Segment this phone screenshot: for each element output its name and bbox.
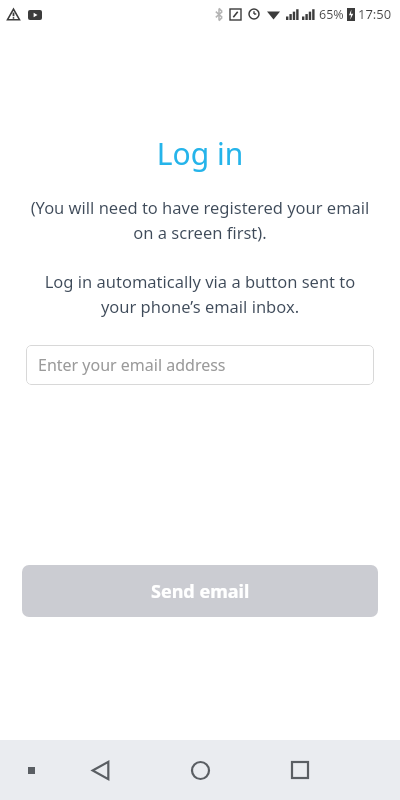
staticText: 65% [319, 6, 344, 23]
staticText: 17:50 [358, 5, 392, 23]
staticText: (You will need to have registered your e… [28, 196, 372, 244]
staticText: Log in [0, 133, 400, 174]
button[interactable]: Send email [22, 565, 378, 617]
button[interactable]: Recents [272, 742, 328, 798]
staticText: Enter your email address [38, 354, 226, 376]
staticText: Send email [151, 579, 250, 604]
button[interactable]: Menu [16, 755, 46, 785]
button[interactable]: Enter your email address [26, 345, 374, 385]
button[interactable]: Home [172, 742, 228, 798]
button[interactable]: Back [72, 742, 128, 798]
staticText: Log in automatically via a button sent t… [26, 270, 374, 318]
